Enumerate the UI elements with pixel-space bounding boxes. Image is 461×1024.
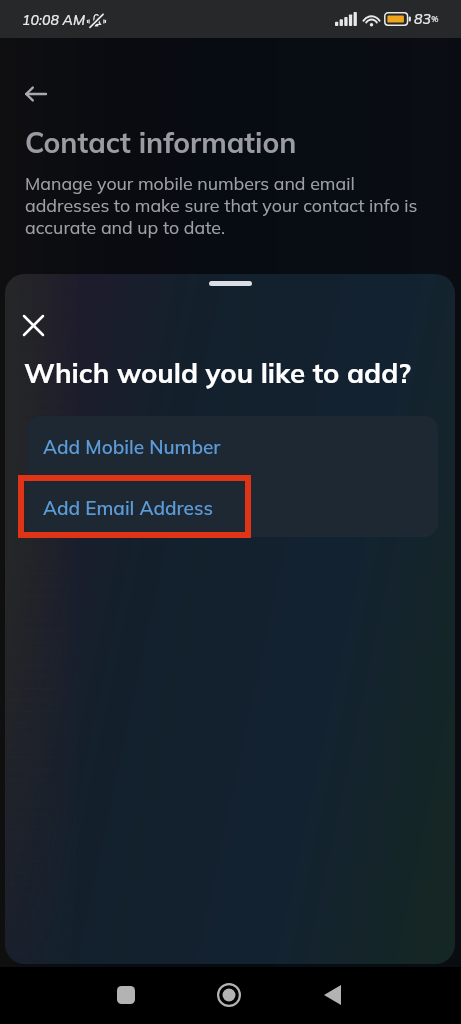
staticText: % [431,14,439,24]
staticText: Manage your mobile numbers and email add… [25,172,439,238]
staticText: 10:08 AM [22,11,85,29]
button[interactable]: Recent apps [117,986,135,1004]
button[interactable]: Close [12,304,54,346]
staticText: Contact information [25,124,297,160]
staticText: Add Email Address [43,496,213,520]
button[interactable]: Back [324,985,341,1005]
button[interactable]: Add Mobile Number [27,416,438,476]
staticText: Which would you like to add? [24,355,412,390]
button[interactable]: Home [217,983,241,1007]
staticText: Add Mobile Number [43,435,221,459]
button[interactable]: Add Email Address [27,476,438,537]
button[interactable]: Back [11,70,59,118]
staticText: 83 [414,10,431,28]
